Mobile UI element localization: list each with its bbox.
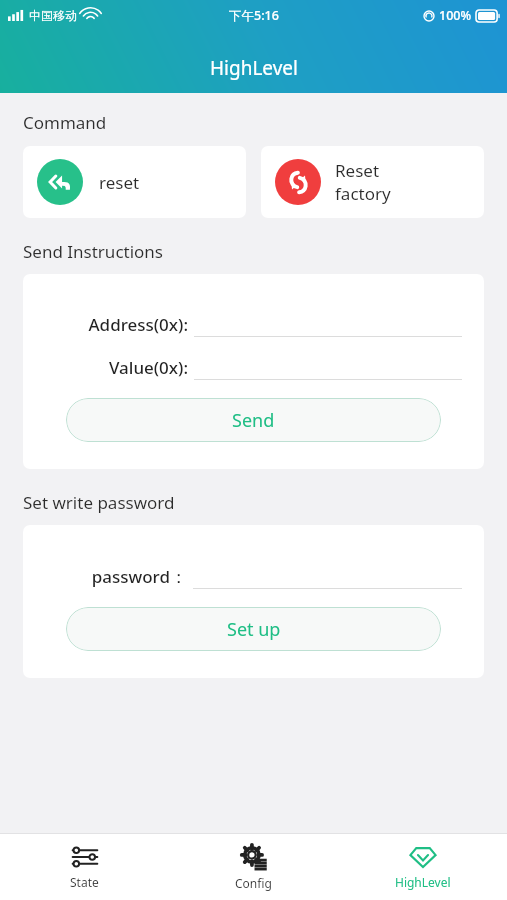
staticText: Value(0x): (108, 356, 188, 379)
staticText: 中国移动 (29, 8, 77, 23)
staticText: 100% (439, 7, 472, 24)
staticText: password： (91, 565, 187, 588)
staticText: Set write password (23, 491, 175, 514)
other: State (71, 845, 99, 869)
staticText: HighLevel (210, 55, 298, 81)
staticText: State (70, 874, 99, 890)
staticText: Set up (227, 617, 281, 642)
staticText: Send Instructions (23, 240, 163, 263)
button[interactable] (193, 563, 462, 589)
staticText: HighLevel (395, 874, 451, 890)
other: Config (241, 844, 267, 870)
button[interactable]: reset (23, 146, 246, 218)
staticText: Command (23, 111, 107, 134)
button[interactable] (194, 311, 462, 337)
button[interactable]: State (0, 834, 169, 900)
staticText: reset (99, 171, 140, 194)
button[interactable] (194, 354, 462, 380)
staticText: Config (235, 875, 272, 891)
button[interactable]: Config (169, 834, 338, 900)
button[interactable]: HighLevel (338, 834, 507, 900)
button[interactable]: Reset factory (261, 146, 484, 218)
staticText: 下午5:16 (229, 7, 279, 24)
other: HighLevel (409, 845, 437, 869)
staticText: Address(0x): (88, 313, 188, 336)
staticText: Reset factory (335, 159, 391, 205)
button[interactable]: Set up (66, 607, 441, 651)
staticText: Send (232, 408, 275, 433)
button[interactable]: Send (66, 398, 441, 442)
